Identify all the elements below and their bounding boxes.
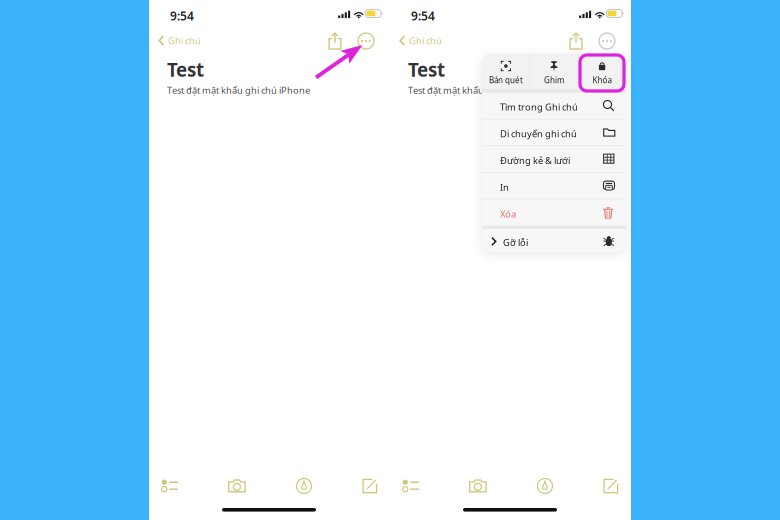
button[interactable]: New note bbox=[591, 473, 631, 499]
button[interactable]: Xóa bbox=[482, 200, 626, 226]
staticText: 9:54 bbox=[411, 8, 435, 24]
button[interactable]: Khóa bbox=[578, 53, 626, 89]
staticText: Ghi chú bbox=[409, 34, 442, 47]
button[interactable]: Camera bbox=[458, 473, 498, 499]
staticText: Di chuyển ghi chú bbox=[500, 127, 577, 140]
button[interactable]: Camera bbox=[217, 473, 257, 499]
button[interactable]: Ghi chú bbox=[157, 30, 217, 52]
button[interactable]: Ghi chú bbox=[398, 30, 458, 52]
staticText: Bản quét bbox=[489, 75, 523, 85]
staticText: Test đặt mật khẩu ghi chú iPhone bbox=[167, 84, 310, 96]
button[interactable]: Bản quét bbox=[482, 53, 530, 89]
button[interactable]: More options bbox=[354, 30, 378, 52]
button[interactable]: Checklist bbox=[150, 473, 190, 499]
button[interactable]: Di chuyển ghi chú bbox=[482, 119, 626, 145]
button[interactable]: In bbox=[482, 173, 626, 199]
button[interactable]: Markup bbox=[525, 473, 565, 499]
staticText: Tìm trong Ghi chú bbox=[500, 101, 578, 113]
button[interactable]: Tìm trong Ghi chú bbox=[482, 93, 626, 119]
staticText: Test bbox=[167, 57, 204, 82]
staticText: Ghim bbox=[544, 75, 564, 85]
button[interactable]: Share bbox=[322, 30, 348, 52]
button[interactable]: Đường kẻ & lưới bbox=[482, 146, 626, 172]
staticText: Gỡ lỗi bbox=[503, 236, 528, 249]
staticText: Ghi chú bbox=[168, 34, 201, 47]
staticText: Xóa bbox=[500, 208, 516, 220]
button[interactable]: Markup bbox=[284, 473, 324, 499]
staticText: Đường kẻ & lưới bbox=[500, 154, 570, 167]
button[interactable]: New note bbox=[350, 473, 390, 499]
button[interactable]: Share bbox=[563, 30, 589, 52]
staticText: 9:54 bbox=[170, 8, 194, 24]
button[interactable]: More options bbox=[595, 30, 619, 52]
button[interactable]: Checklist bbox=[391, 473, 431, 499]
button[interactable]: Gỡ lỗi bbox=[482, 229, 626, 253]
staticText: In bbox=[500, 181, 509, 193]
staticText: Test bbox=[408, 57, 445, 82]
button[interactable]: Ghim bbox=[530, 53, 578, 89]
staticText: Test đặt mật khẩu ghi chú iPhone bbox=[408, 84, 551, 96]
staticText: Khóa bbox=[593, 75, 612, 85]
